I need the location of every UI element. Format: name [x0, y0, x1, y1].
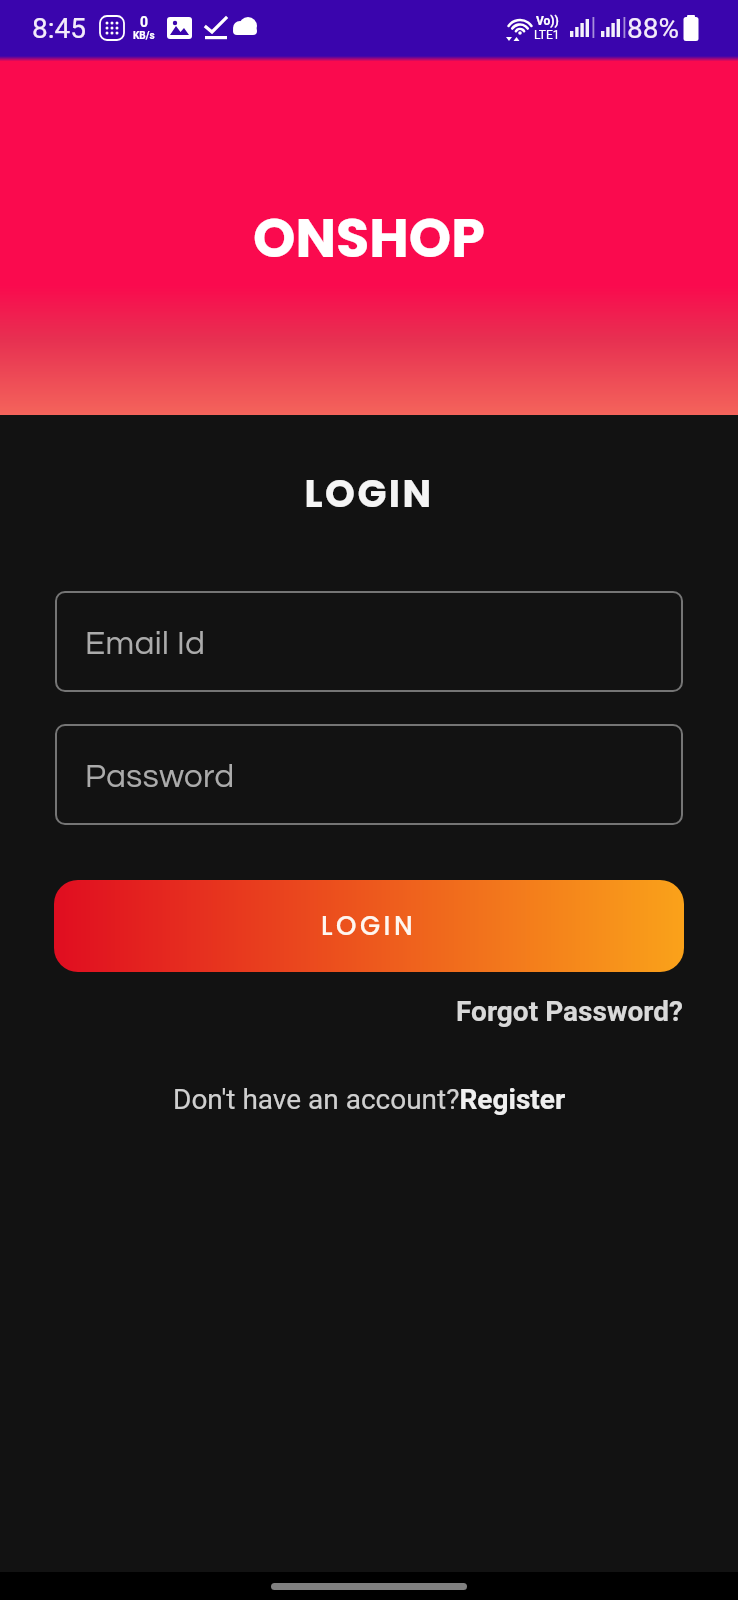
staticText: 88%: [627, 12, 679, 45]
staticText: LOGIN: [0, 467, 738, 520]
staticText: 0: [140, 14, 149, 30]
button[interactable]: Don't have an account?Register: [0, 1083, 738, 1116]
button[interactable]: LOGIN: [54, 880, 684, 972]
staticText: LOGIN: [321, 908, 417, 944]
button[interactable]: Forgot Password?: [0, 995, 683, 1028]
staticText: LTE1: [534, 28, 560, 42]
staticText: Forgot Password?: [456, 995, 683, 1028]
staticText: 8:45: [32, 12, 86, 45]
staticText: Password: [85, 760, 235, 794]
staticText: KB/s: [133, 30, 155, 42]
button[interactable]: Password: [55, 724, 683, 825]
staticText: Don't have an account?Register: [173, 1083, 566, 1116]
staticText: Vo)): [536, 14, 559, 28]
staticText: ONSHOP: [253, 200, 485, 276]
staticText: Email Id: [85, 627, 206, 661]
button[interactable]: Email Id: [55, 591, 683, 692]
